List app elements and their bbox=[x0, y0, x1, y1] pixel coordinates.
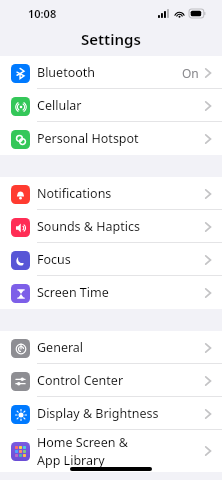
staticText: Notifications bbox=[37, 185, 112, 202]
button[interactable]: Home Screen & bbox=[0, 430, 222, 472]
button[interactable]: Display & Brightness bbox=[0, 397, 222, 430]
staticText: Display & Brightness bbox=[37, 405, 159, 422]
staticText: App Library bbox=[37, 452, 105, 469]
staticText: Sounds & Haptics bbox=[37, 218, 140, 235]
staticText: Control Center bbox=[37, 372, 124, 389]
staticText: Home Screen & bbox=[37, 434, 128, 451]
staticText: Focus bbox=[37, 251, 71, 268]
button[interactable]: Screen Time bbox=[0, 276, 222, 309]
staticText: Settings bbox=[81, 29, 141, 49]
staticText: General bbox=[37, 339, 84, 356]
button[interactable]: Focus bbox=[0, 243, 222, 276]
button[interactable]: Sounds & Haptics bbox=[0, 210, 222, 243]
button[interactable]: Personal Hotspot bbox=[0, 122, 222, 155]
staticText: Bluetooth bbox=[37, 64, 96, 81]
button[interactable]: Control Center bbox=[0, 364, 222, 397]
staticText: On bbox=[182, 65, 199, 81]
staticText: Screen Time bbox=[37, 284, 109, 301]
button[interactable]: Notifications bbox=[0, 177, 222, 210]
staticText: Cellular bbox=[37, 97, 82, 114]
staticText: 10:08 bbox=[28, 6, 57, 21]
button[interactable]: General bbox=[0, 331, 222, 364]
button[interactable]: Bluetooth bbox=[0, 56, 222, 89]
staticText: Personal Hotspot bbox=[37, 130, 139, 147]
button[interactable]: Cellular bbox=[0, 89, 222, 122]
